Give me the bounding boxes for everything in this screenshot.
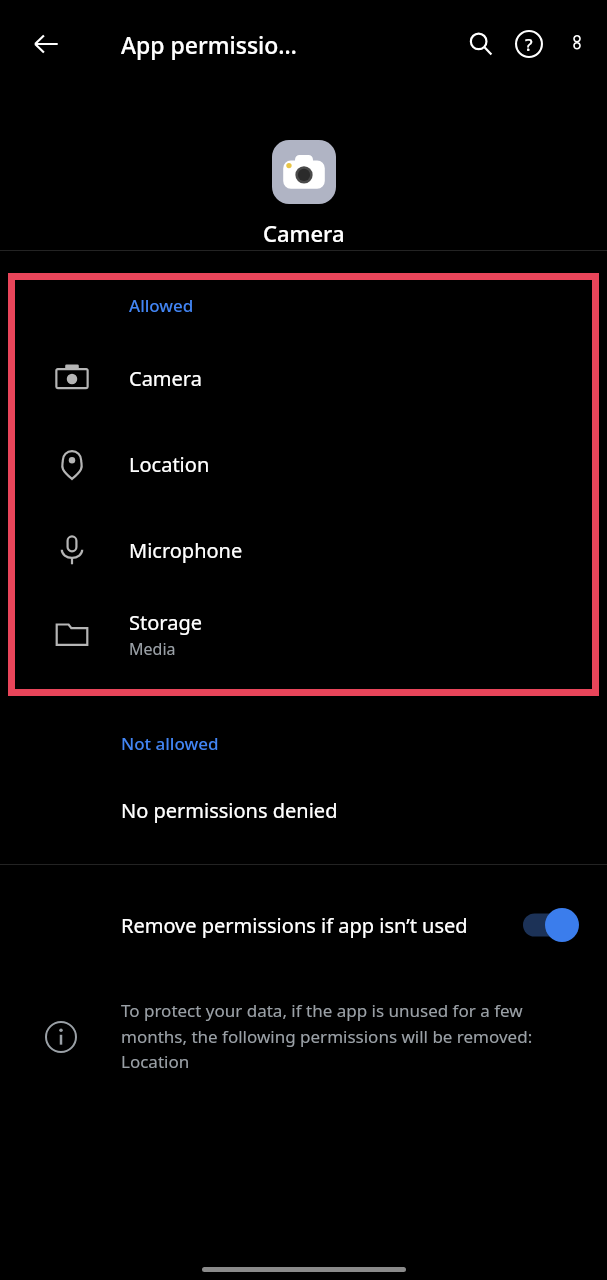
staticText: Camera: [263, 218, 345, 248]
staticText: Storage: [129, 609, 202, 636]
staticText: Allowed: [129, 294, 194, 317]
button[interactable]: Storage: [15, 593, 592, 675]
staticText: No permissions denied: [121, 797, 338, 824]
button[interactable]: Help: [505, 20, 553, 68]
button[interactable]: Camera: [15, 335, 592, 421]
staticText: To protect your data, if the app is unus…: [121, 999, 581, 1073]
staticText: Media: [129, 638, 176, 660]
staticText: Microphone: [129, 537, 243, 564]
button[interactable]: Microphone: [15, 507, 592, 593]
button[interactable]: Search: [457, 20, 505, 68]
button[interactable]: More options: [553, 20, 601, 68]
button[interactable]: Location: [15, 421, 592, 507]
button[interactable]: Remove permissions if app isn’t used: [0, 865, 607, 985]
staticText: Camera: [129, 365, 202, 392]
staticText: Location: [129, 451, 210, 478]
staticText: App permissio…: [121, 29, 297, 60]
staticText: ?: [525, 33, 533, 56]
button[interactable]: Back: [22, 20, 70, 68]
staticText: Remove permissions if app isn’t used: [121, 912, 471, 939]
staticText: Not allowed: [121, 732, 219, 755]
